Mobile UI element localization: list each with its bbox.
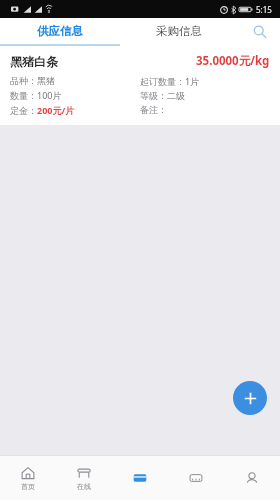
staticText: 1片 (185, 75, 200, 87)
staticText: 供应信息 (37, 24, 83, 38)
staticText: 在线 (77, 482, 91, 491)
staticText: 二级 (167, 90, 185, 101)
button[interactable]: Search (238, 18, 280, 44)
staticText: 等级： (140, 90, 167, 101)
button[interactable]: 供应信息 (0, 18, 119, 44)
staticText: 数量： (10, 90, 37, 101)
staticText: 35.0000元/kg (196, 53, 270, 69)
staticText: 100片 (37, 89, 62, 101)
button[interactable]: 在线 (56, 456, 112, 500)
staticText: 品种： (10, 75, 37, 86)
button[interactable]: Tab (224, 456, 280, 500)
staticText: 黑猪白条 (10, 54, 58, 69)
staticText: 200元/片 (37, 104, 75, 116)
staticText: 备注： (140, 104, 167, 115)
staticText: 采购信息 (156, 24, 202, 38)
button[interactable]: Tab (168, 456, 224, 500)
staticText: 首页 (21, 482, 35, 491)
button[interactable]: Tab (112, 456, 168, 500)
staticText: 定金： (10, 105, 37, 116)
staticText: 黑猪 (37, 75, 55, 86)
button[interactable]: Add (233, 381, 267, 415)
button[interactable]: 首页 (0, 456, 56, 500)
button[interactable]: 黑猪白条 (0, 46, 280, 125)
staticText: 起订数量： (140, 76, 185, 87)
staticText: 5:15 (256, 4, 272, 15)
button[interactable]: 采购信息 (119, 18, 238, 44)
